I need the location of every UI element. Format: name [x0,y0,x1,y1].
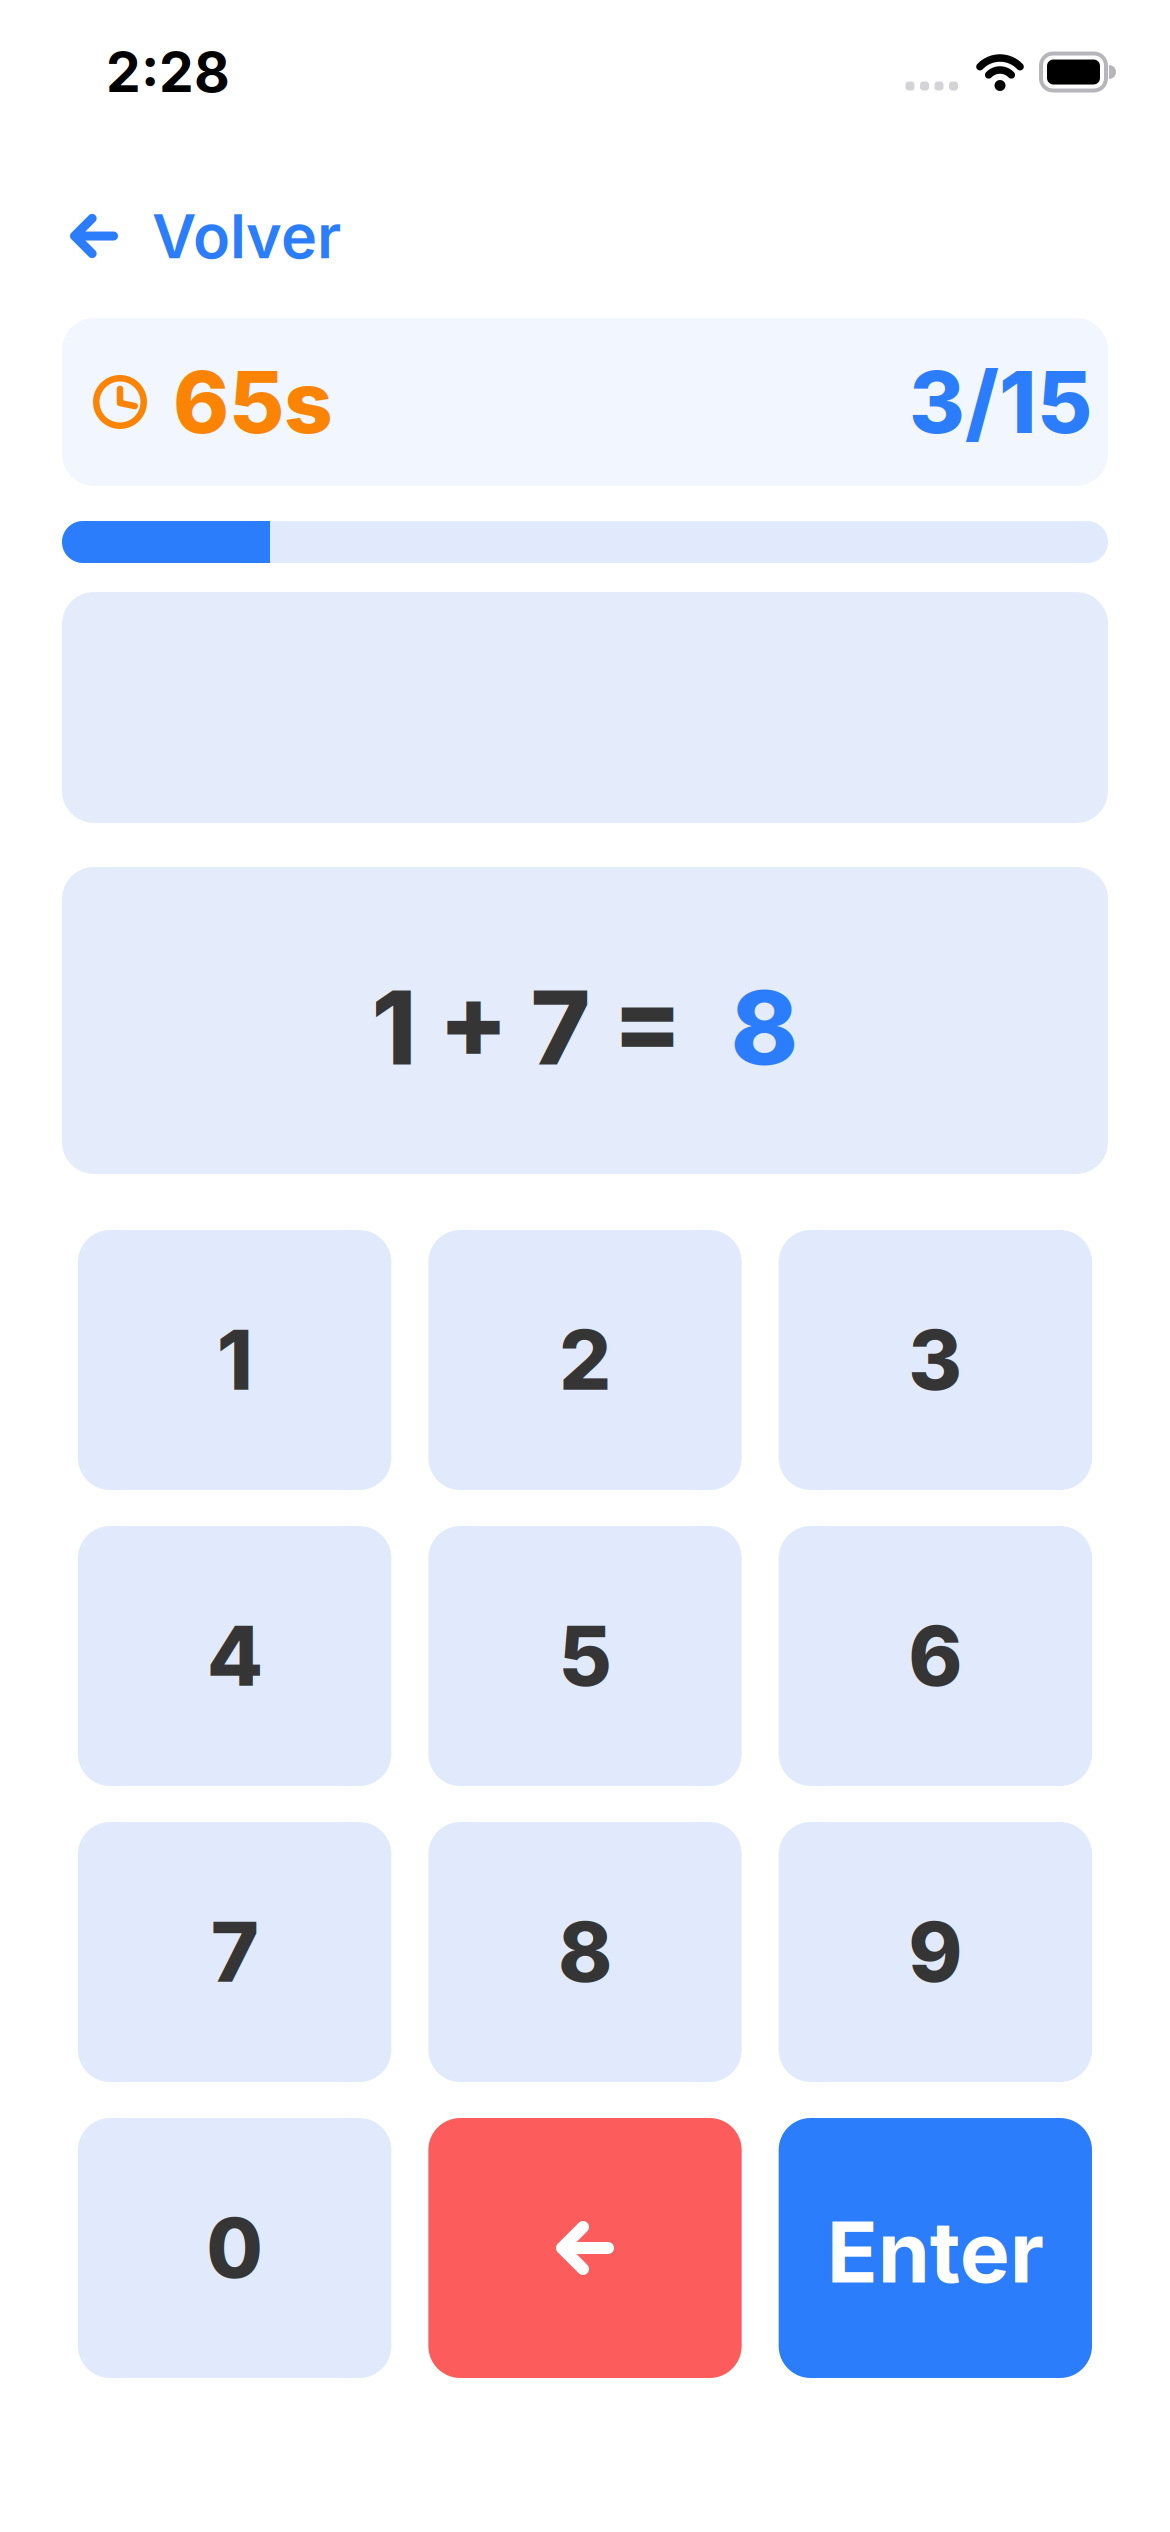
staticText: 3 [908,1310,962,1410]
staticText: 6 [908,1606,962,1706]
staticText: 0 [206,2198,263,2298]
button[interactable]: 1 [78,1230,391,1490]
staticText: 3/15 [909,351,1092,453]
button[interactable]: 7 [78,1822,391,2082]
staticText: 4 [207,1606,263,1706]
button[interactable]: Enter [779,2118,1092,2378]
button[interactable]: 6 [779,1526,1092,1786]
staticText: 65s [173,351,333,453]
button[interactable]: Volver [0,199,341,273]
staticText: 9 [908,1902,962,2002]
staticText: 1 [217,1310,253,1410]
staticText: 5 [558,1606,611,1706]
staticText: Enter [827,2201,1044,2303]
staticText: 8 [558,1902,612,2002]
button[interactable]: 2 [428,1230,742,1490]
button[interactable]: Borrar [428,2118,742,2378]
button[interactable]: 4 [78,1526,391,1786]
staticText: 1 + 7 = [371,966,682,1089]
staticText: Volver [152,199,341,273]
staticText: 7 [211,1902,259,2002]
button[interactable]: 0 [78,2118,391,2378]
button[interactable]: 3 [779,1230,1092,1490]
button[interactable]: 8 [428,1822,742,2082]
staticText: 8 [730,966,798,1089]
button[interactable]: 9 [779,1822,1092,2082]
staticText: 2 [559,1310,611,1410]
button[interactable]: 5 [428,1526,742,1786]
staticText: 2:28 [106,39,230,105]
